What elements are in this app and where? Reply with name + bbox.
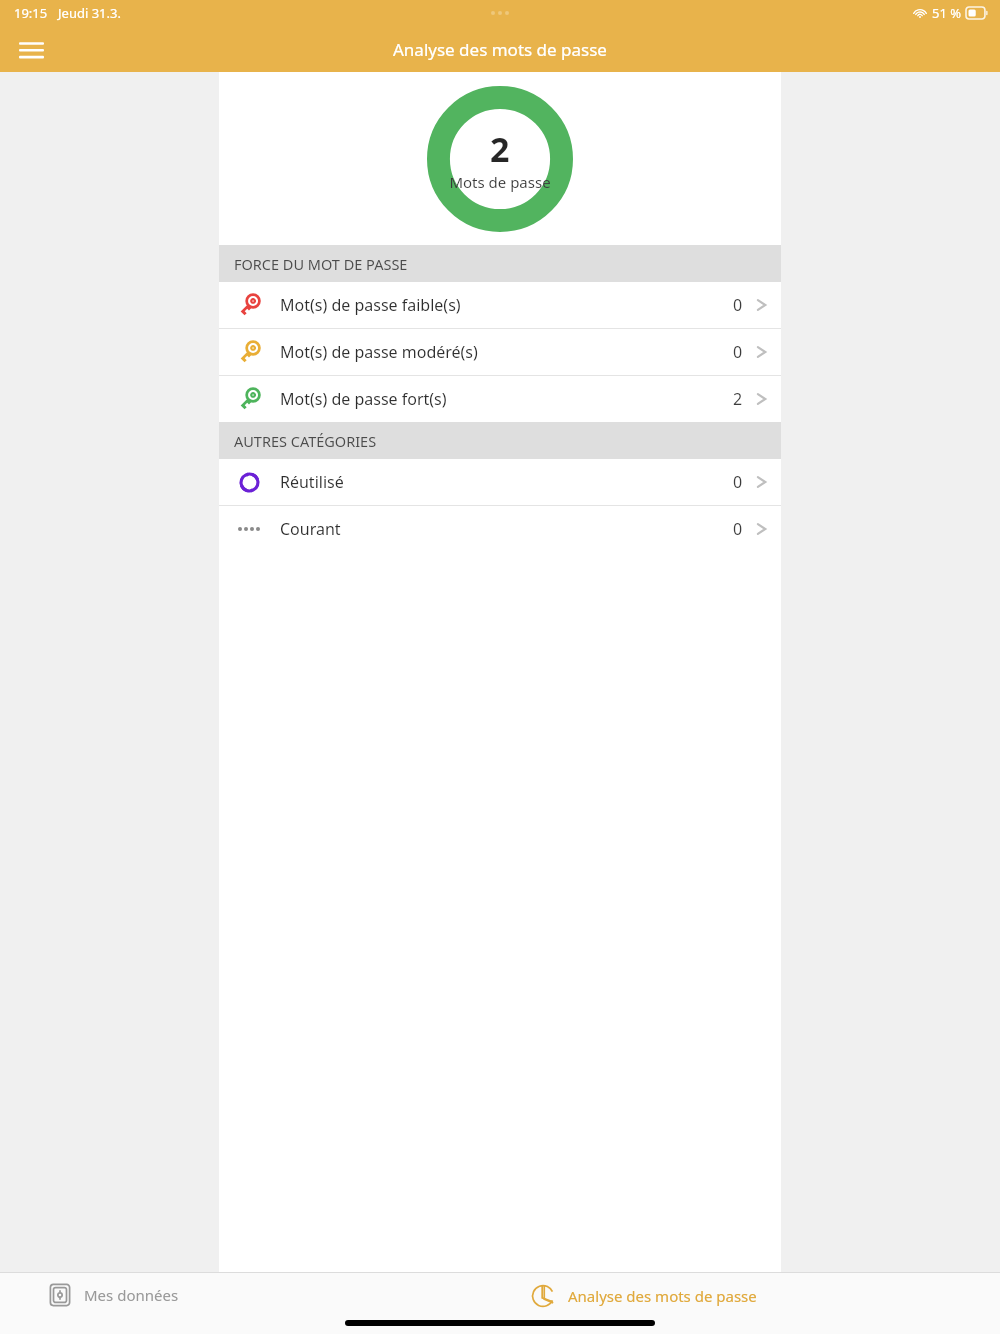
button[interactable]: Mot(s) de passe fort(s): [219, 376, 781, 422]
staticText: FORCE DU MOT DE PASSE: [234, 254, 408, 274]
button[interactable]: Menu: [8, 26, 54, 72]
staticText: 0: [733, 471, 743, 493]
staticText: Mot(s) de passe modéré(s): [280, 341, 478, 363]
staticText: 0: [733, 518, 743, 540]
staticText: 2: [490, 126, 510, 172]
button[interactable]: Mot(s) de passe modéré(s): [219, 329, 781, 375]
staticText: Réutilisé: [280, 471, 344, 493]
staticText: Analyse des mots de passe: [568, 1286, 757, 1306]
staticText: 0: [733, 341, 743, 363]
staticText: AUTRES CATÉGORIES: [234, 431, 377, 451]
button[interactable]: Analyse des mots de passe: [500, 1283, 1000, 1309]
staticText: 0: [733, 294, 743, 316]
staticText: 2: [733, 388, 743, 410]
staticText: Mot(s) de passe faible(s): [280, 294, 461, 316]
staticText: Mot(s) de passe fort(s): [280, 388, 447, 410]
button[interactable]: Courant: [219, 506, 781, 552]
staticText: 19:15: [14, 4, 48, 22]
staticText: 51 %: [932, 4, 962, 22]
button[interactable]: Réutilisé: [219, 459, 781, 505]
staticText: Analyse des mots de passe: [393, 38, 607, 61]
staticText: Jeudi 31.3.: [58, 4, 121, 22]
staticText: Courant: [280, 518, 341, 540]
button[interactable]: Mot(s) de passe faible(s): [219, 282, 781, 328]
staticText: Mes données: [84, 1285, 179, 1305]
staticText: Mots de passe: [449, 172, 551, 192]
button[interactable]: Mes données: [0, 1283, 500, 1307]
